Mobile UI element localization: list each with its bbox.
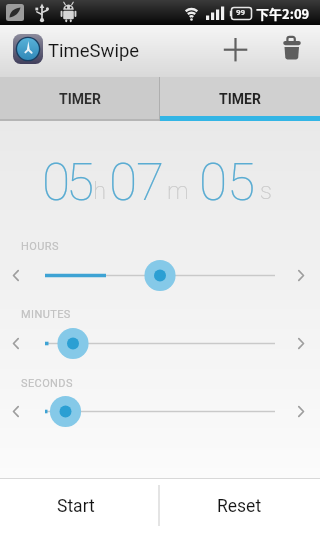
staticText: Start: [57, 496, 95, 517]
staticText: 0: [199, 152, 228, 212]
button[interactable]: [144, 259, 176, 291]
staticText: s: [260, 177, 272, 205]
button[interactable]: Start: [0, 479, 158, 533]
button[interactable]: [211, 27, 258, 75]
button[interactable]: [2, 390, 32, 433]
button[interactable]: [2, 322, 32, 365]
staticText: 5: [227, 152, 256, 212]
staticText: Reset: [217, 496, 262, 517]
staticText: SECONDS: [21, 377, 73, 390]
staticText: h: [93, 177, 107, 205]
staticText: 0: [109, 152, 138, 212]
staticText: 5: [66, 152, 95, 212]
staticText: 7: [136, 152, 165, 212]
button[interactable]: [268, 27, 315, 75]
staticText: TimeSwipe: [48, 40, 140, 62]
staticText: m: [167, 177, 189, 205]
button[interactable]: [2, 254, 32, 297]
button[interactable]: [57, 327, 89, 359]
button[interactable]: TIMER: [0, 77, 160, 121]
staticText: 下午2:09: [256, 4, 310, 23]
button[interactable]: [288, 322, 318, 365]
staticText: 0: [42, 152, 71, 212]
button[interactable]: TIMER: [160, 77, 320, 121]
button[interactable]: [49, 395, 81, 427]
staticText: TIMER: [59, 91, 101, 107]
staticText: 99: [236, 8, 246, 17]
button[interactable]: [288, 254, 318, 297]
button[interactable]: [288, 390, 318, 433]
staticText: MINUTES: [21, 308, 71, 321]
button[interactable]: Reset: [158, 479, 320, 533]
staticText: TIMER: [219, 91, 261, 107]
staticText: HOURS: [21, 240, 59, 253]
